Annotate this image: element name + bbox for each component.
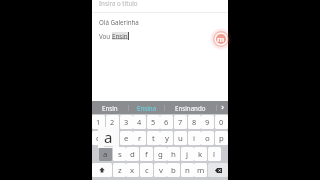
button[interactable]: 6 [160, 115, 173, 129]
button[interactable]: s [113, 147, 126, 161]
staticText: 3 [124, 117, 129, 127]
button[interactable]: e [120, 131, 133, 145]
button[interactable]: u [174, 131, 187, 145]
staticText: 6 [164, 117, 169, 127]
staticText: m [197, 165, 205, 176]
staticText: 9 [205, 117, 210, 127]
button[interactable]: y [160, 131, 173, 145]
button[interactable]: x [126, 163, 139, 177]
button[interactable]: 9 [201, 115, 214, 129]
staticText: t [152, 133, 155, 144]
staticText: k [198, 149, 203, 160]
staticText: 0 [219, 117, 224, 127]
button[interactable]: 8 [188, 115, 201, 129]
staticText: m [217, 34, 225, 44]
button[interactable]: f [140, 147, 153, 161]
button[interactable]: 2 [106, 115, 119, 129]
staticText: h [171, 149, 176, 160]
staticText: u [178, 133, 183, 144]
staticText: 5 [151, 117, 156, 127]
staticText: Vou [99, 32, 112, 40]
staticText: w [109, 133, 116, 144]
staticText: s [118, 149, 122, 160]
button[interactable]: 1 [92, 115, 105, 129]
button[interactable]: z [113, 163, 126, 177]
button[interactable]: Ensinando [165, 101, 216, 114]
button[interactable]: n [181, 163, 194, 177]
staticText: g [158, 149, 163, 160]
staticText: l [213, 149, 216, 160]
button[interactable]: v [154, 163, 167, 177]
button[interactable]: m [194, 163, 207, 177]
button[interactable]: r [133, 131, 146, 145]
staticText: d [130, 149, 135, 160]
button[interactable]: c [140, 163, 153, 177]
staticText: a [104, 127, 113, 147]
button[interactable]: a [99, 147, 112, 161]
button[interactable]: h [167, 147, 180, 161]
button[interactable]: Ensina [129, 101, 164, 114]
staticText: i [193, 133, 196, 144]
staticText: Ensin [102, 104, 118, 112]
button[interactable]: k [194, 147, 207, 161]
staticText: Insira o título [99, 0, 138, 7]
button[interactable]: l [208, 147, 221, 161]
button[interactable]: g [154, 147, 167, 161]
button[interactable]: Ensin [92, 101, 128, 114]
staticText: 1 [96, 117, 101, 127]
staticText: r [138, 133, 142, 144]
staticText: e [124, 133, 129, 144]
staticText: 7 [178, 117, 183, 127]
staticText: n [185, 165, 190, 176]
staticText: b [171, 165, 176, 176]
button[interactable]: More suggestions [217, 101, 228, 114]
button[interactable]: 4 [133, 115, 146, 129]
staticText: Ensina [137, 104, 157, 112]
staticText: 2 [110, 117, 115, 127]
button[interactable]: 5 [147, 115, 160, 129]
staticText: z [118, 165, 122, 176]
staticText: a [103, 149, 108, 160]
button[interactable]: Backspace [208, 163, 228, 177]
button[interactable]: b [167, 163, 180, 177]
staticText: j [186, 149, 189, 160]
button[interactable]: 3 [120, 115, 133, 129]
staticText: v [159, 165, 163, 176]
staticText: Ensin [112, 32, 128, 40]
staticText: y [165, 133, 169, 144]
button[interactable]: j [181, 147, 194, 161]
button[interactable]: d [126, 147, 139, 161]
button[interactable]: Shift [92, 163, 112, 177]
button[interactable]: 7 [174, 115, 187, 129]
button[interactable]: i [188, 131, 201, 145]
button[interactable]: t [147, 131, 160, 145]
button[interactable]: w [106, 131, 119, 145]
staticText: o [205, 133, 210, 144]
button[interactable]: p [215, 131, 228, 145]
staticText: q [96, 133, 101, 144]
staticText: 4 [137, 117, 142, 127]
staticText: f [145, 149, 148, 160]
staticText: p [219, 133, 224, 144]
staticText: Olá Galerinha [99, 18, 139, 26]
button[interactable]: q [92, 131, 105, 145]
staticText: c [145, 165, 149, 176]
button[interactable]: 0 [215, 115, 228, 129]
staticText: x [130, 165, 135, 176]
staticText: 8 [192, 117, 197, 127]
button[interactable]: o [201, 131, 214, 145]
staticText: Ensinando [175, 104, 206, 112]
